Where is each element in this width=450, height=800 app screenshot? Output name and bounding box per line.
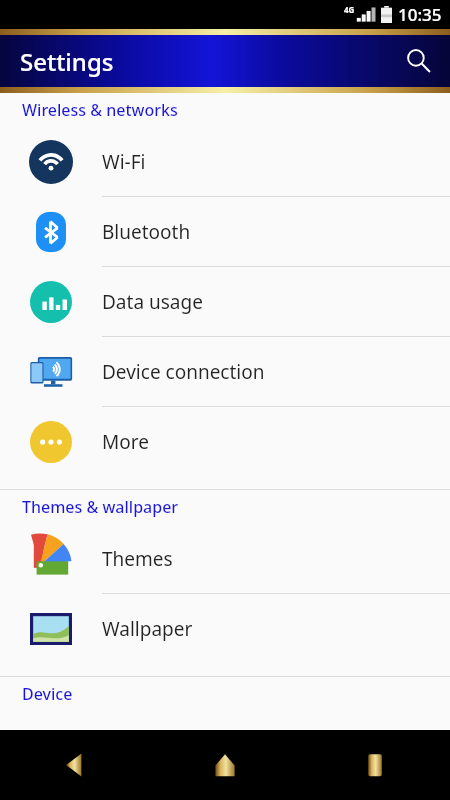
button[interactable]: Bluetooth [0,197,450,267]
button[interactable]: Back [0,730,150,800]
staticText: 10:35 [398,3,442,26]
staticText: Wallpaper [102,616,193,642]
button[interactable]: Recents [300,730,450,800]
button[interactable]: Data usage [0,267,450,337]
staticText: Themes & wallpaper [22,496,179,518]
button[interactable]: Search [394,37,442,85]
staticText: Settings [20,45,114,78]
button[interactable]: Home [150,730,300,800]
button[interactable]: Wi-Fi [0,127,450,197]
staticText: More [102,429,149,455]
staticText: Data usage [102,289,203,315]
button[interactable]: Themes [0,524,450,594]
staticText: Themes [102,546,173,572]
staticText: Wi-Fi [102,149,146,175]
staticText: 4G [344,4,355,15]
button[interactable]: Wallpaper [0,594,450,664]
staticText: Device connection [102,359,265,385]
staticText: Bluetooth [102,219,191,245]
staticText: Device [22,683,73,705]
button[interactable]: Device connection [0,337,450,407]
button[interactable]: More [0,407,450,477]
staticText: Wireless & networks [22,99,178,121]
